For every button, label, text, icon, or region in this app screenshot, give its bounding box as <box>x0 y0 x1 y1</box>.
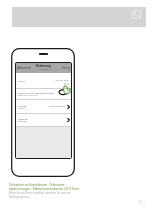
staticText: Teilnahme an Konditionen · Teilnahme <box>9 183 65 187</box>
staticText: Details ansehen <box>49 105 66 108</box>
other: Open <box>67 117 70 123</box>
staticText: Rechnung <box>36 64 52 68</box>
staticText: fällig am 12.08.2024 <box>18 94 38 97</box>
staticText: Übersicht <box>39 68 49 71</box>
button[interactable]: Zahlung <box>18 114 70 126</box>
staticText: Lastschrift für die neue Anlage <box>18 91 54 94</box>
button[interactable]: Vertrag <box>18 100 70 113</box>
staticText: abrechnungen · Rahmenvereinbarten OS 9 F… <box>9 187 80 191</box>
staticText: Konto <box>18 79 26 82</box>
other: Tap here <box>58 82 72 95</box>
button[interactable]: Konto <box>18 73 69 88</box>
staticText: Abbrechen <box>17 66 32 70</box>
staticText: Zahlung <box>18 117 28 120</box>
button[interactable]: Fertig <box>54 66 70 70</box>
staticText: Nr. 8812 <box>18 107 26 110</box>
button[interactable]: Lastschrift für die neue Anlage <box>18 89 69 99</box>
staticText: Methode <box>18 120 27 123</box>
button[interactable]: Abbrechen <box>17 66 33 70</box>
staticText: Vertrag <box>18 104 27 107</box>
staticText: Bedingungen zu. <box>9 195 30 199</box>
staticText: 1.234,56 EUR <box>54 79 69 82</box>
staticText: Wenn Sie ein Konto erstellen, stimmen Si… <box>9 191 71 195</box>
other: Open <box>67 104 70 110</box>
staticText: Fertig <box>62 66 70 70</box>
